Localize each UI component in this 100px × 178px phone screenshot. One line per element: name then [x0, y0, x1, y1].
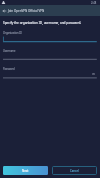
staticText: Organization ID: [3, 31, 22, 34]
staticText: Cancel: [70, 169, 79, 173]
button[interactable]: Username: [0, 43, 100, 60]
button[interactable]: Cancel: [52, 166, 97, 175]
staticText: Join OpenVPN Official VPN: [8, 9, 45, 13]
button[interactable]: Next: [3, 166, 48, 175]
button[interactable]: Back: [0, 5, 8, 16]
button[interactable]: Password: [0, 61, 100, 78]
staticText: Specify the organization ID, username, a…: [3, 21, 82, 25]
button[interactable]: Organization ID: [0, 25, 100, 42]
button[interactable]: Show password: [88, 71, 99, 77]
staticText: 2:48: [91, 1, 97, 5]
staticText: Password: [3, 67, 15, 70]
staticText: Username: [3, 49, 16, 52]
staticText: Next: [22, 169, 29, 173]
